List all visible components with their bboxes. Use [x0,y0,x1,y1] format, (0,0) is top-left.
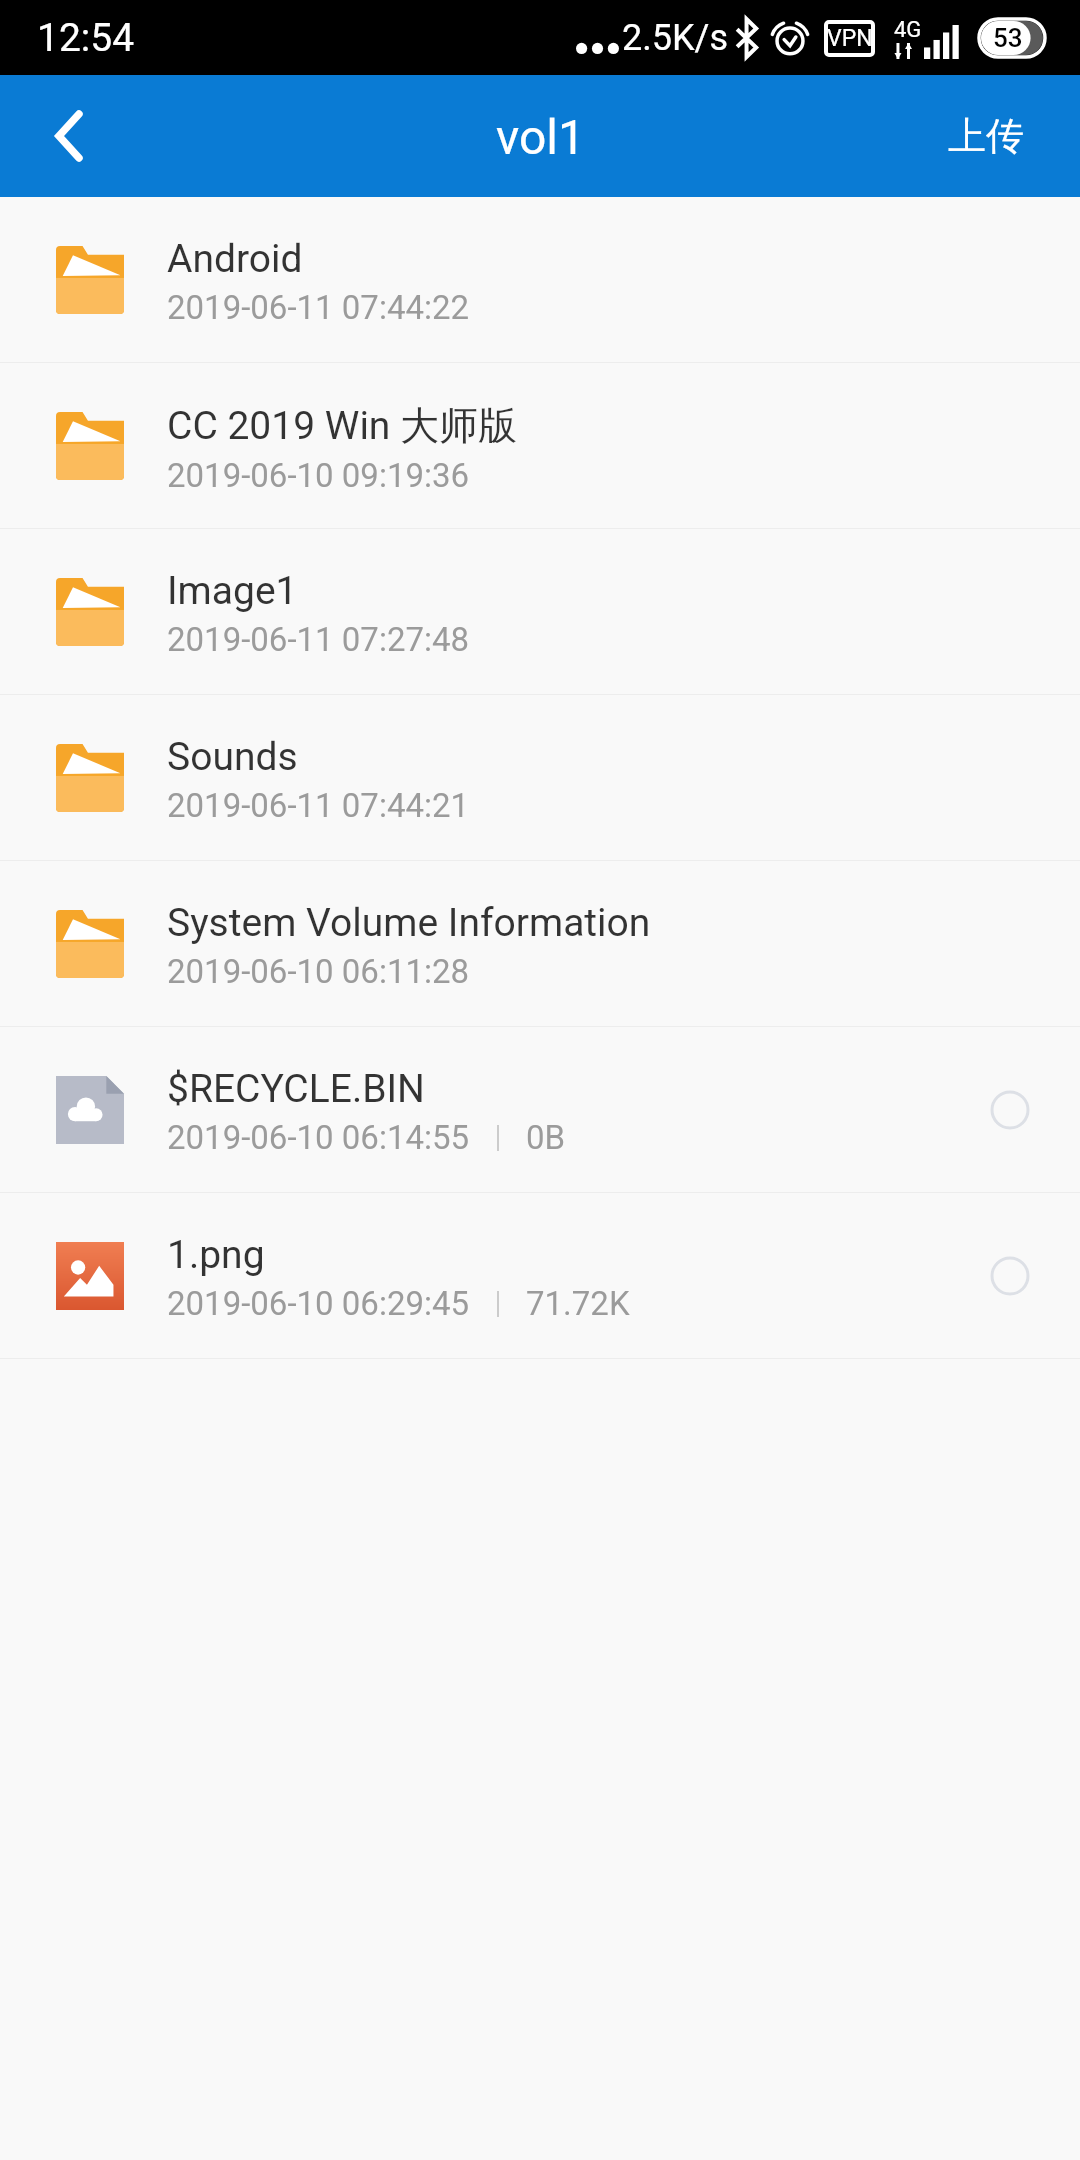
staticText: $RECYCLE.BIN [167,1066,425,1112]
staticText: 2019-06-11 07:44:22 [167,288,470,327]
button[interactable]: 上传 [892,90,1080,182]
staticText: 0B [526,1118,566,1157]
staticText: 1.png [167,1232,265,1278]
button[interactable]: Android [0,197,1080,363]
staticText: System Volume Information [167,900,651,946]
staticText: CC 2019 Win 大师版 [167,401,518,450]
staticText: 4G [894,17,922,43]
staticText: 2019-06-10 06:11:28 [167,952,470,991]
staticText: 2019-06-10 06:14:55 [167,1118,470,1157]
staticText: vol1 [496,109,585,165]
staticText: Android [167,236,303,282]
button[interactable]: CC 2019 Win 大师版 [0,363,1080,529]
button[interactable]: Image1 [0,529,1080,695]
staticText: 上传 [948,112,1024,160]
button[interactable]: $RECYCLE.BIN [0,1027,1080,1193]
staticText: Image1 [167,568,298,614]
staticText: 2019-06-10 09:19:36 [167,456,470,495]
staticText: VPN [827,25,873,52]
button[interactable]: Back [0,75,134,197]
staticText: 71.72K [526,1284,630,1323]
staticText: 12:54 [37,15,135,61]
button[interactable]: System Volume Information [0,861,1080,1027]
staticText: 2019-06-11 07:44:21 [167,786,470,825]
staticText: 2.5K/s [622,17,728,59]
staticText: Sounds [167,734,298,780]
button[interactable]: Sounds [0,695,1080,861]
staticText: 2019-06-11 07:27:48 [167,620,470,659]
staticText: 2019-06-10 06:29:45 [167,1284,470,1323]
staticText: 53 [993,23,1023,53]
button[interactable]: 1.png [0,1193,1080,1359]
